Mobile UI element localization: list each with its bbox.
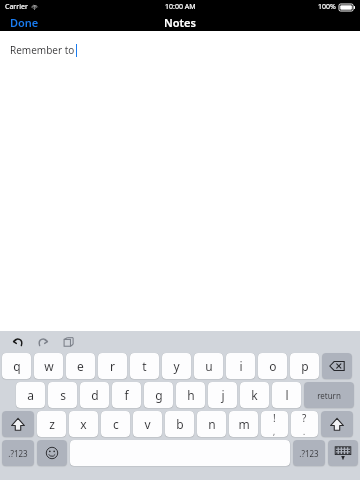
button[interactable]: l bbox=[272, 382, 301, 408]
staticText: i bbox=[239, 358, 243, 374]
button[interactable]: Hide keyboard bbox=[328, 440, 358, 466]
staticText: c bbox=[113, 416, 119, 432]
button[interactable]: b bbox=[165, 411, 194, 437]
button[interactable]: h bbox=[176, 382, 205, 408]
button[interactable]: g bbox=[144, 382, 173, 408]
button[interactable]: Done bbox=[10, 14, 39, 31]
button[interactable]: ! bbox=[261, 411, 288, 437]
button[interactable]: v bbox=[133, 411, 162, 437]
button[interactable]: m bbox=[229, 411, 258, 437]
staticText: r bbox=[110, 358, 115, 374]
staticText: w bbox=[44, 358, 54, 374]
button[interactable]: Paste bbox=[58, 332, 78, 352]
button[interactable]: c bbox=[101, 411, 130, 437]
staticText: l bbox=[285, 387, 289, 403]
button[interactable]: Redo bbox=[33, 332, 53, 352]
button[interactable]: Undo bbox=[8, 332, 28, 352]
button[interactable]: Emoji bbox=[37, 440, 67, 466]
staticText: ! bbox=[273, 411, 276, 425]
staticText: q bbox=[13, 358, 21, 374]
button[interactable]: w bbox=[34, 353, 63, 379]
staticText: Remember to bbox=[10, 43, 75, 57]
staticText: d bbox=[91, 387, 99, 403]
staticText: .?123 bbox=[299, 448, 319, 459]
button[interactable]: .?123 bbox=[293, 440, 325, 466]
button[interactable]: y bbox=[162, 353, 191, 379]
button[interactable]: a bbox=[16, 382, 45, 408]
staticText: f bbox=[124, 387, 129, 403]
button[interactable]: e bbox=[66, 353, 95, 379]
staticText: g bbox=[155, 387, 163, 403]
staticText: a bbox=[27, 387, 34, 403]
button[interactable]: p bbox=[290, 353, 319, 379]
button[interactable]: d bbox=[80, 382, 109, 408]
button[interactable]: n bbox=[197, 411, 226, 437]
staticText: e bbox=[77, 358, 84, 374]
staticText: t bbox=[142, 358, 147, 374]
staticText: m bbox=[238, 416, 250, 432]
button[interactable]: Shift bbox=[2, 411, 34, 437]
button[interactable]: i bbox=[226, 353, 255, 379]
staticText: u bbox=[205, 358, 213, 374]
staticText: ? bbox=[302, 411, 307, 425]
button[interactable]: .?123 bbox=[2, 440, 34, 466]
button[interactable]: q bbox=[2, 353, 31, 379]
button[interactable]: j bbox=[208, 382, 237, 408]
button[interactable]: t bbox=[130, 353, 159, 379]
staticText: y bbox=[173, 358, 180, 374]
button[interactable]: Shift bbox=[321, 411, 353, 437]
button[interactable]: s bbox=[48, 382, 77, 408]
staticText: x bbox=[80, 416, 87, 432]
button[interactable]: f bbox=[112, 382, 141, 408]
staticText: Done bbox=[10, 15, 39, 30]
staticText: .?123 bbox=[8, 448, 28, 459]
button[interactable]: o bbox=[258, 353, 287, 379]
button[interactable]: return bbox=[304, 382, 354, 408]
staticText: p bbox=[301, 358, 309, 374]
staticText: 10:00 AM bbox=[165, 2, 196, 12]
staticText: b bbox=[176, 416, 184, 432]
button[interactable]: k bbox=[240, 382, 269, 408]
button[interactable]: r bbox=[98, 353, 127, 379]
staticText: v bbox=[144, 416, 151, 432]
button[interactable]: Remember to bbox=[0, 31, 360, 331]
staticText: return bbox=[317, 390, 341, 401]
button[interactable]: Backspace bbox=[322, 353, 352, 379]
staticText: k bbox=[251, 387, 258, 403]
staticText: Carrier bbox=[5, 2, 28, 12]
button[interactable]: z bbox=[37, 411, 66, 437]
staticText: n bbox=[208, 416, 216, 432]
staticText: Notes bbox=[164, 15, 196, 30]
staticText: h bbox=[187, 387, 195, 403]
staticText: j bbox=[221, 387, 225, 403]
staticText: . bbox=[303, 426, 306, 437]
staticText: 100% bbox=[318, 2, 336, 12]
staticText: z bbox=[49, 416, 55, 432]
button[interactable]: x bbox=[69, 411, 98, 437]
button[interactable]: u bbox=[194, 353, 223, 379]
staticText: , bbox=[273, 426, 276, 437]
staticText: s bbox=[60, 387, 66, 403]
button[interactable]: ? bbox=[291, 411, 318, 437]
staticText: o bbox=[269, 358, 277, 374]
